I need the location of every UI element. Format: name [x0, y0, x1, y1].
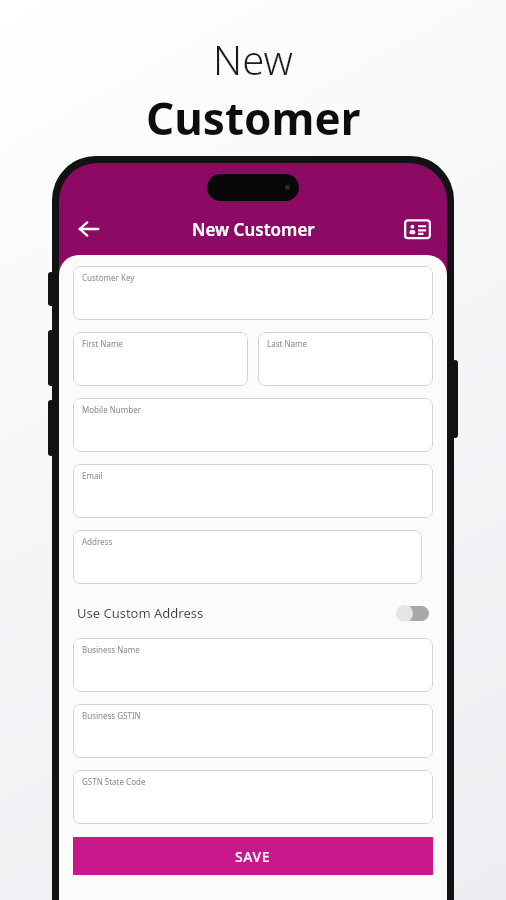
staticText: Business Name: [82, 644, 140, 655]
staticText: Customer Key: [82, 272, 135, 283]
staticText: Business GSTIN: [82, 710, 141, 721]
button[interactable]: Business Name: [73, 638, 433, 692]
staticText: Address: [82, 536, 113, 547]
button[interactable]: Back: [69, 209, 109, 249]
staticText: GSTN State Code: [82, 776, 146, 787]
button[interactable]: Use Custom Address: [73, 590, 433, 636]
button[interactable]: Email: [73, 464, 433, 518]
staticText: New Customer: [192, 218, 315, 241]
staticText: Customer: [146, 88, 361, 148]
staticText: New: [213, 32, 293, 86]
button[interactable]: First Name: [73, 332, 248, 386]
staticText: Email: [82, 470, 103, 481]
staticText: Use Custom Address: [77, 604, 396, 622]
button[interactable]: Last Name: [258, 332, 433, 386]
button[interactable]: Contacts: [397, 209, 437, 249]
button[interactable]: Business GSTIN: [73, 704, 433, 758]
button[interactable]: GSTN State Code: [73, 770, 433, 824]
staticText: Last Name: [267, 338, 308, 349]
button[interactable]: SAVE: [73, 837, 433, 875]
button[interactable]: Mobile Number: [73, 398, 433, 452]
staticText: First Name: [82, 338, 123, 349]
staticText: Mobile Number: [82, 404, 141, 415]
staticText: SAVE: [235, 847, 271, 866]
button[interactable]: Customer Key: [73, 266, 433, 320]
button[interactable]: Address: [73, 530, 422, 584]
